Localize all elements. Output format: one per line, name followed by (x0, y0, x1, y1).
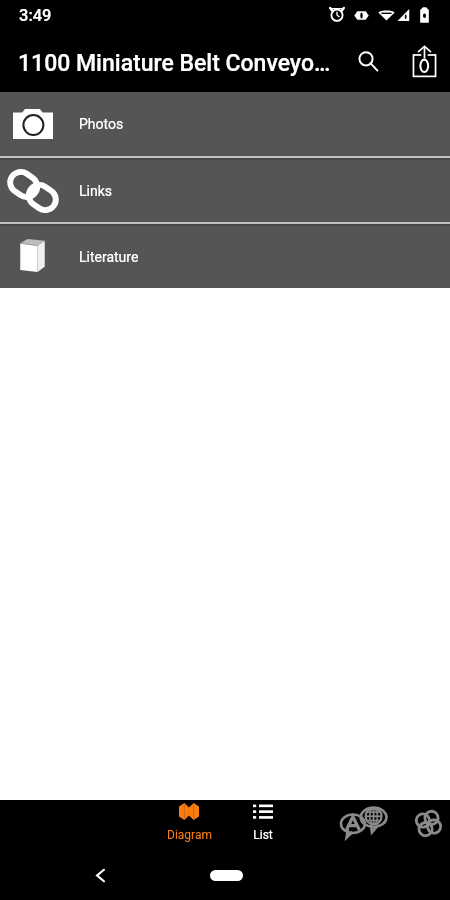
staticText: Links (79, 183, 112, 199)
staticText: List (253, 828, 273, 842)
button[interactable]: Search (344, 37, 392, 85)
staticText: Diagram (167, 828, 212, 842)
button[interactable]: Export (400, 37, 448, 85)
button[interactable]: Translate (339, 797, 387, 847)
button[interactable]: Diagram (156, 800, 222, 850)
staticText: Literature (79, 249, 139, 265)
button[interactable]: List (230, 800, 296, 850)
button[interactable]: Photos (0, 92, 450, 156)
button[interactable]: Links (0, 160, 450, 222)
staticText: 3:49 (19, 6, 52, 25)
button[interactable]: Home (210, 870, 243, 881)
staticText: 1100 Miniature Belt Conveyo… (18, 50, 331, 77)
button[interactable]: App logo (404, 798, 450, 848)
staticText: Photos (79, 116, 124, 132)
button[interactable]: Back (82, 857, 118, 893)
button[interactable]: Literature (0, 226, 450, 288)
